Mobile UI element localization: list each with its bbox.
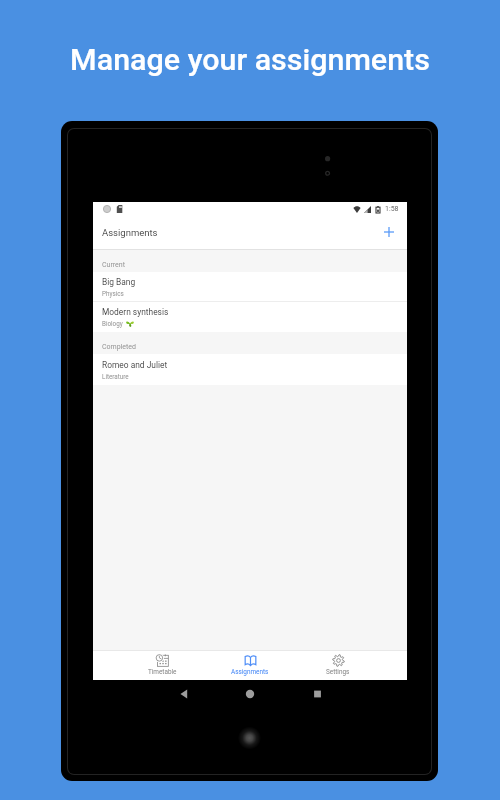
staticText: Assignments (231, 668, 269, 676)
button[interactable]: Timetable (118, 651, 206, 680)
staticText: Physics (102, 290, 124, 297)
button[interactable]: Assignments (206, 651, 294, 680)
staticText: Modern synthesis (102, 307, 169, 317)
button[interactable]: Settings (294, 651, 382, 680)
staticText: Timetable (148, 668, 177, 676)
staticText: Big Bang (102, 277, 136, 287)
staticText: Literature (102, 373, 129, 380)
staticText: Settings (326, 668, 350, 676)
staticText: Romeo and Juliet (102, 360, 168, 370)
staticText: Assignments (102, 227, 158, 238)
button[interactable]: Big Bang (93, 272, 407, 301)
staticText: Completed (102, 343, 136, 351)
staticText: Biology (102, 320, 123, 327)
staticText: Current (102, 261, 125, 269)
button[interactable]: Add assignment (378, 221, 400, 243)
button[interactable]: Modern synthesis (93, 302, 407, 332)
staticText: Manage your assignments (0, 42, 500, 78)
staticText: 1:58 (385, 205, 399, 213)
button[interactable]: Romeo and Juliet (93, 354, 407, 385)
